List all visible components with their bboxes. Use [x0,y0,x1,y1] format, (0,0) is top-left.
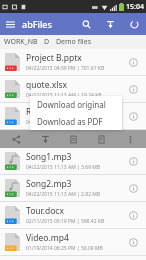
staticText: 04/22/2015 11:13 AM | 2.82 MB [26,191,101,198]
button[interactable]: Song1.mp3 [0,148,146,174]
button[interactable]: Project B.pptx [0,49,146,75]
button[interactable]: Video.mp4 [0,229,146,255]
button[interactable]: File info [124,53,142,71]
button[interactable]: More options [118,130,142,148]
button[interactable]: quote.xlsx [0,76,146,102]
button[interactable]: Demo files [56,37,91,47]
button[interactable]: WORK_NB [4,37,38,47]
button[interactable]: File info [124,206,142,224]
staticText: 15:04 [126,2,144,12]
button[interactable]: File info [124,179,142,197]
button[interactable]: Open navigation menu [0,14,20,34]
staticText: Video.mp4 [26,232,69,244]
staticText: 01/19/2014 06:25 PM | 50.09 MB [26,245,103,252]
staticText: quote.xlsx [26,79,68,91]
staticText: 04/22/2015 10:02 AM | 88.10 KB [26,119,102,126]
button[interactable]: File info [124,80,142,98]
button[interactable]: Download as PDF [30,113,122,130]
button[interactable]: Tour.docx [0,202,146,228]
staticText: abFiles [22,18,52,30]
button[interactable]: Download [33,130,57,148]
button[interactable]: Search [74,13,98,35]
button[interactable]: File info [124,233,142,251]
button[interactable]: File info [124,107,142,125]
staticText: 04/22/2015 04:59 PM | 701.97 KB [26,65,105,72]
staticText: 04/22/2015 11:13 AM | 3.69 MB [26,164,101,171]
staticText: Download original [37,99,106,110]
staticText: Song2.mp3 [26,178,72,190]
staticText: 04/22/2015 11:13 AM | 19.24 KB [26,92,102,99]
staticText: Project B.pptx [26,52,82,64]
button[interactable]: Refresh [122,13,146,35]
button[interactable]: Upload [98,13,122,35]
button[interactable]: File info [124,152,142,170]
button[interactable]: Report.docx [0,103,146,129]
staticText: Tour.docx [26,205,64,217]
button[interactable]: Song2.mp3 [0,175,146,201]
staticText: Song1.mp3 [26,151,72,163]
button[interactable]: Download original [30,96,122,113]
button[interactable]: D [44,37,50,47]
button[interactable]: Save offline [61,130,85,148]
staticText: Download as PDF [37,116,103,127]
button[interactable]: Copy [89,130,113,148]
button[interactable]: Share [4,130,28,148]
staticText: Report.docx [26,106,75,118]
staticText: 02/11/2015 05:19 PM | 598.42 KB [26,218,105,225]
